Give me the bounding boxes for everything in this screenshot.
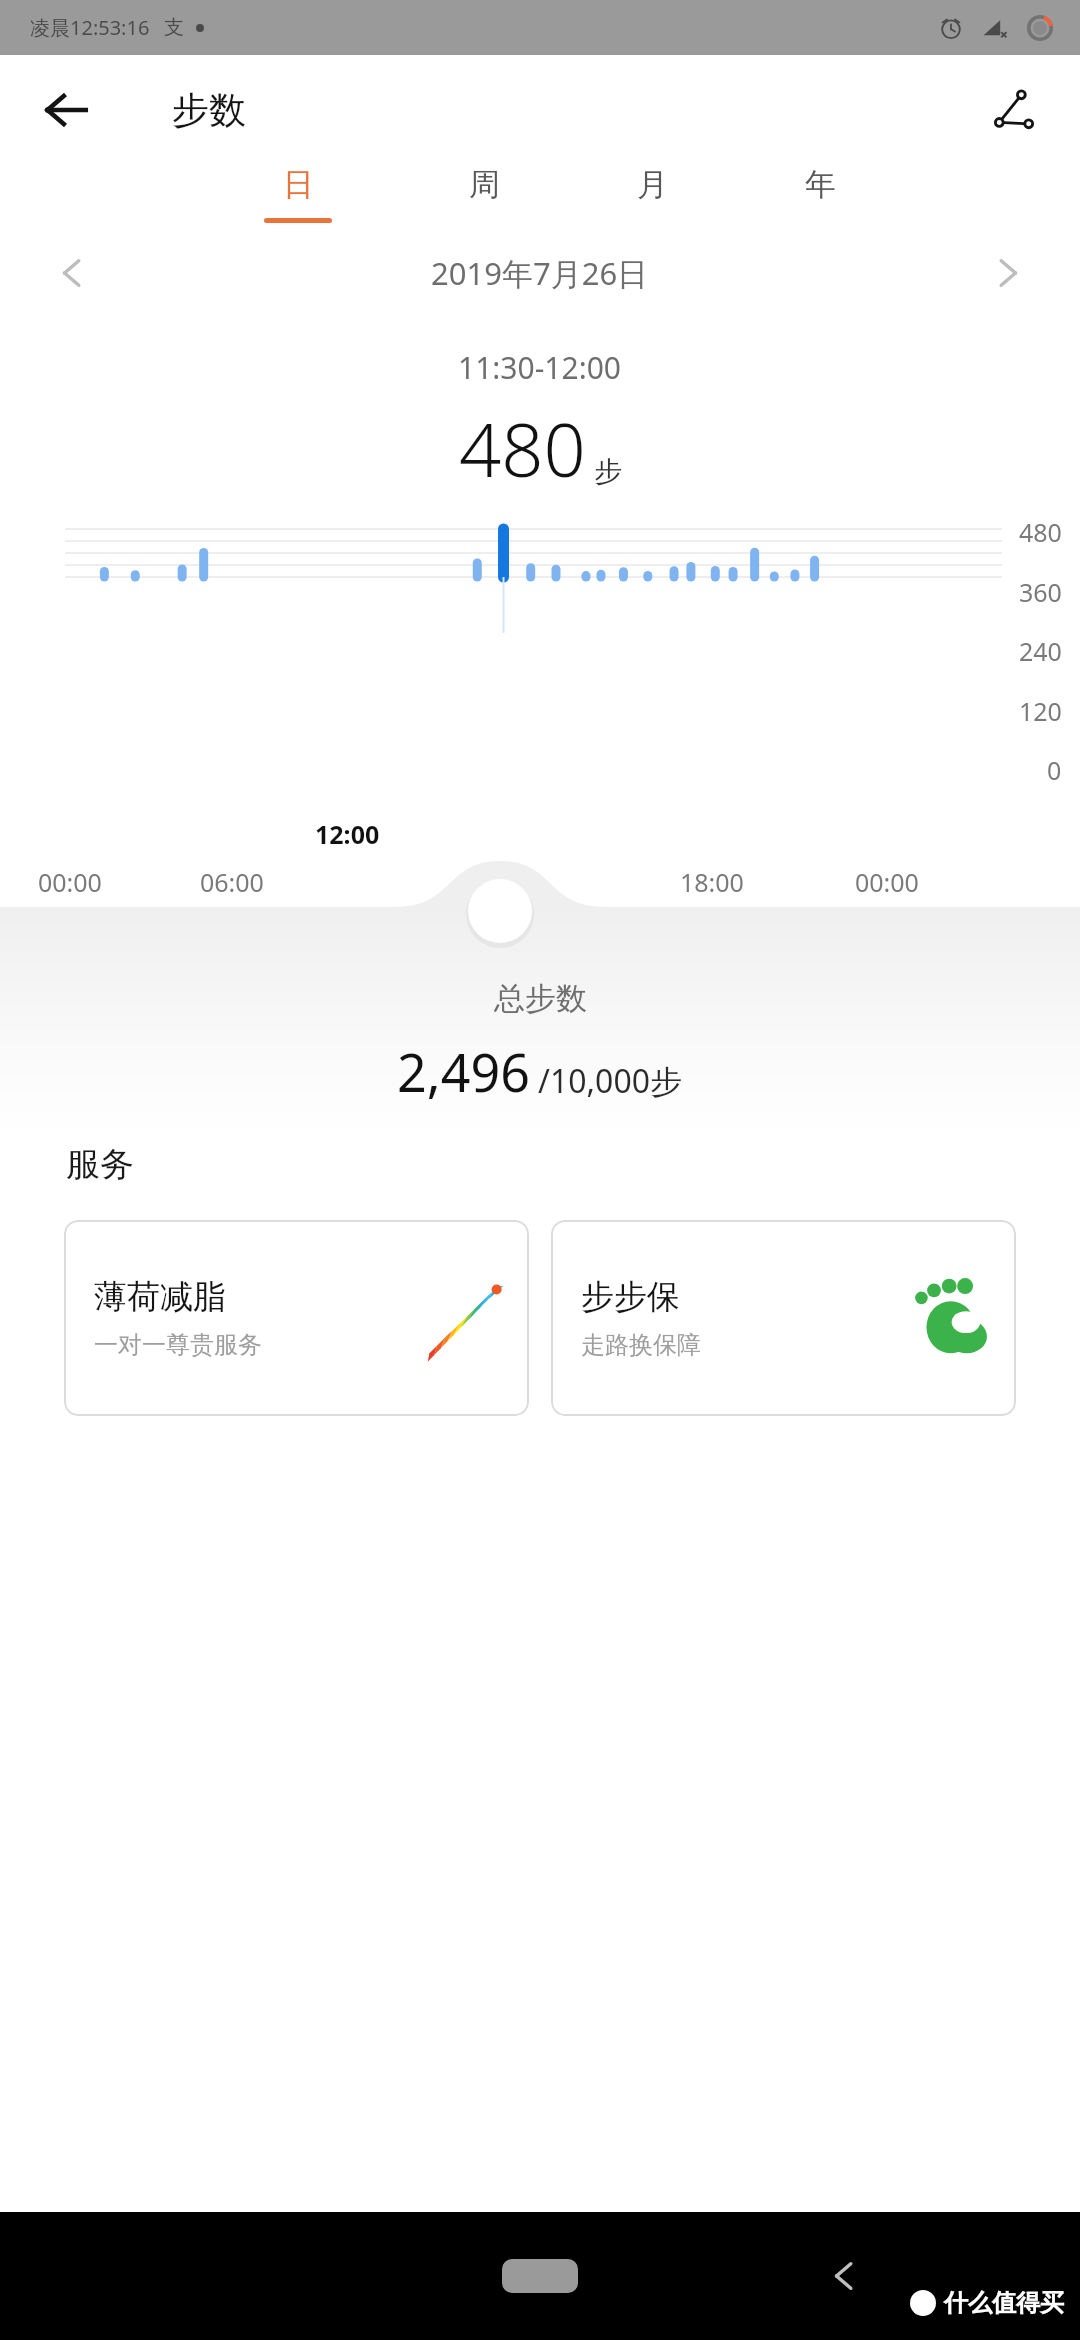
staticText: 12:00 <box>315 817 380 851</box>
staticText: 周 <box>469 165 500 204</box>
staticText: 日 <box>283 165 314 204</box>
staticText: 11:30-12:00 <box>458 347 622 388</box>
button[interactable]: 步步保 <box>551 1220 1016 1416</box>
staticText: 薄荷减脂 <box>94 1276 226 1318</box>
staticText: 2019年7月26日 <box>431 252 649 294</box>
staticText: 步 <box>594 454 622 489</box>
button[interactable]: 分享 <box>982 78 1046 142</box>
staticText: 480 <box>459 398 586 499</box>
staticText: 步步保 <box>581 1276 680 1318</box>
staticText: 0 <box>1047 753 1062 787</box>
staticText: 服务 <box>66 1143 134 1186</box>
staticText: 月 <box>637 165 668 204</box>
button[interactable]: 返回 <box>808 2240 880 2312</box>
staticText: 2,496 <box>397 1036 530 1107</box>
button[interactable]: 月 <box>623 165 682 223</box>
button[interactable]: 前一天 <box>44 245 100 301</box>
button[interactable]: 主页 <box>480 2252 600 2300</box>
staticText: 480 <box>1019 515 1062 549</box>
button[interactable]: 日 <box>250 165 346 223</box>
staticText: 年 <box>805 165 836 204</box>
staticText: 00:00 <box>855 865 919 899</box>
staticText: 走路换保障 <box>581 1330 701 1360</box>
staticText: 什么值得买 <box>944 2288 1064 2318</box>
staticText: 360 <box>1019 575 1062 609</box>
button[interactable]: 周 <box>455 165 514 223</box>
staticText: 240 <box>1019 634 1062 668</box>
staticText: 18:00 <box>680 865 744 899</box>
button[interactable]: 年 <box>791 165 850 223</box>
button[interactable]: 薄荷减脂 <box>64 1220 529 1416</box>
staticText: 一对一尊贵服务 <box>94 1330 262 1360</box>
staticText: 00:00 <box>38 865 102 899</box>
staticText: 06:00 <box>200 865 264 899</box>
staticText: 支 <box>164 15 184 40</box>
button[interactable]: 返回 <box>34 78 98 142</box>
button[interactable]: 后一天 <box>980 245 1036 301</box>
staticText: 步数 <box>172 87 246 134</box>
staticText: 凌晨12:53:16 <box>30 14 150 41</box>
staticText: 总步数 <box>494 979 587 1018</box>
staticText: /10,000步 <box>538 1059 683 1103</box>
staticText: 120 <box>1019 694 1062 728</box>
